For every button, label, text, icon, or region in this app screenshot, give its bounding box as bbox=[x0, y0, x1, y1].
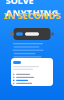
staticText: IN SECONDS bbox=[3, 9, 60, 22]
staticText: SOLVE ANYTHING bbox=[5, 0, 58, 19]
